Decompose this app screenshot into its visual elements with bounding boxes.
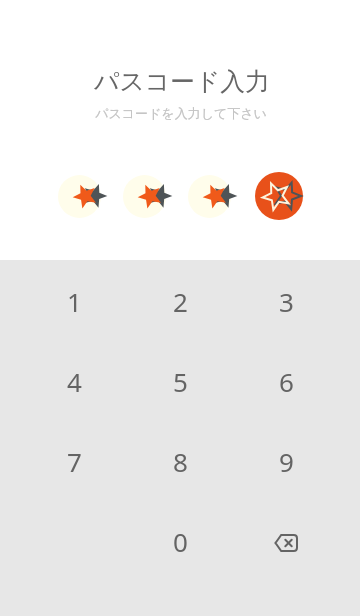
button[interactable]: 2 <box>127 261 233 341</box>
staticText: 0 <box>173 524 188 559</box>
staticText: 5 <box>173 364 188 399</box>
button[interactable]: Backspace <box>233 501 339 581</box>
staticText: パスコードを入力して下さい <box>95 105 267 121</box>
button[interactable]: 5 <box>127 341 233 421</box>
button[interactable]: 4 <box>21 341 127 421</box>
staticText: パスコード入力 <box>94 66 270 97</box>
button[interactable]: 6 <box>233 341 339 421</box>
button[interactable]: 9 <box>233 421 339 501</box>
button[interactable]: 7 <box>21 421 127 501</box>
button[interactable]: 3 <box>233 261 339 341</box>
button[interactable]: 0 <box>127 501 233 581</box>
staticText: 8 <box>173 444 188 479</box>
button[interactable]: 1 <box>21 261 127 341</box>
staticText: 6 <box>279 364 294 399</box>
staticText: 2 <box>173 284 188 319</box>
staticText: 1 <box>67 284 82 319</box>
staticText: 4 <box>67 364 82 399</box>
button[interactable]: 8 <box>127 421 233 501</box>
staticText: 3 <box>279 284 294 319</box>
staticText: 9 <box>279 444 294 479</box>
staticText: 7 <box>67 444 82 479</box>
